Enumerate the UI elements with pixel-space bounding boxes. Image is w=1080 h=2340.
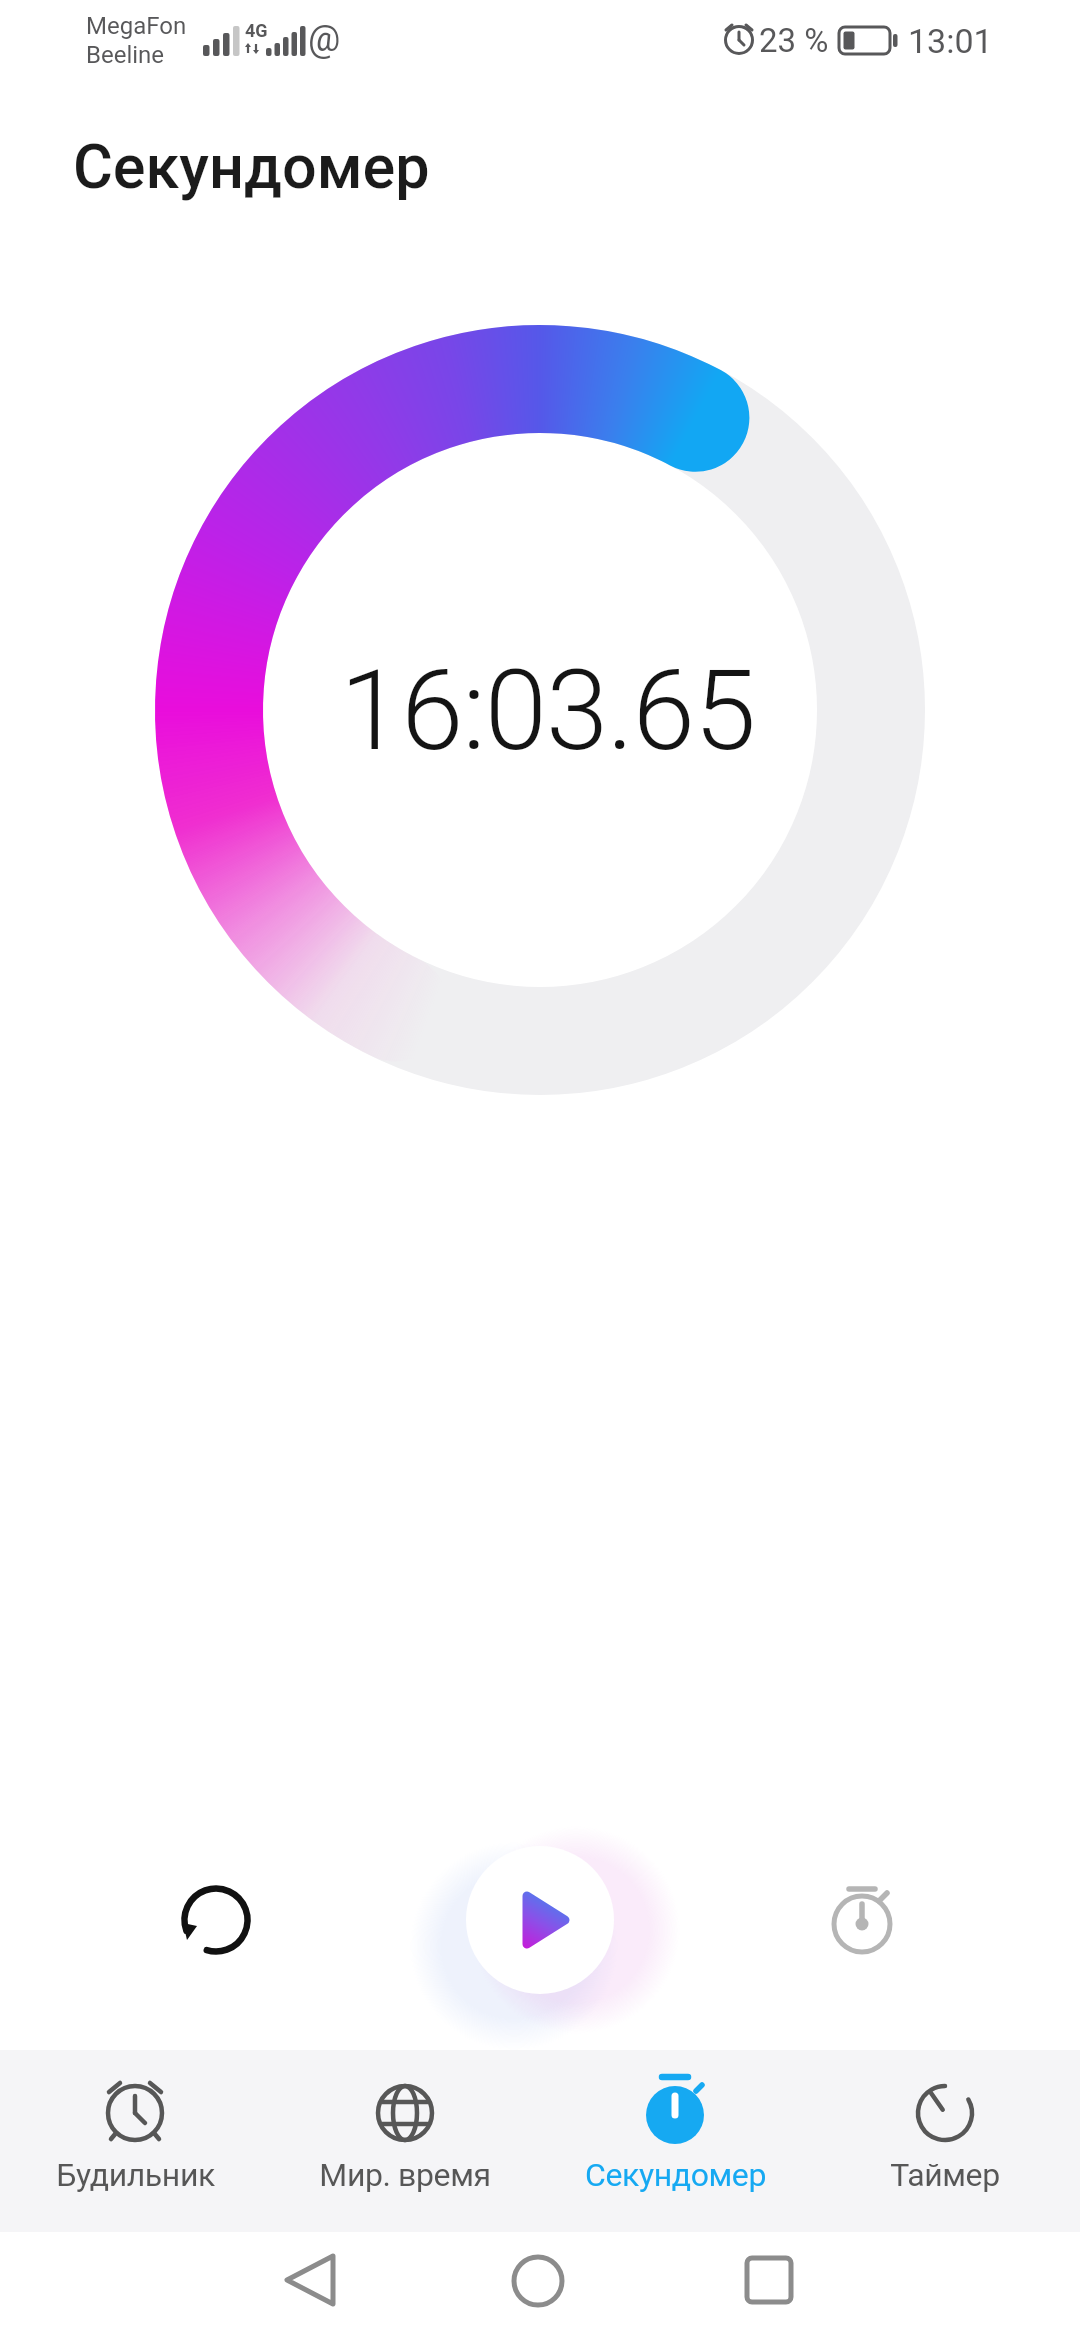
staticText: Будильник [56, 2156, 215, 2194]
staticText: 4G [245, 20, 268, 41]
staticText: 23 % [759, 21, 829, 60]
button[interactable] [508, 2250, 568, 2310]
button[interactable] [280, 2250, 340, 2310]
staticText: Таймер [890, 2156, 1000, 2194]
button[interactable] [466, 1846, 614, 1994]
staticText: Мир. время [319, 2156, 491, 2194]
staticText: Секундомер [73, 131, 430, 202]
button[interactable]: Секундомер [555, 2072, 795, 2194]
button[interactable]: Таймер [825, 2072, 1065, 2194]
staticText: 16:03.65 [340, 645, 756, 776]
button[interactable] [802, 1864, 922, 1984]
staticText: MegaFon [86, 12, 187, 40]
staticText: @ [308, 18, 341, 60]
button[interactable]: Будильник [15, 2072, 255, 2194]
staticText: 13:01 [908, 21, 993, 61]
button[interactable]: Мир. время [285, 2072, 525, 2194]
button[interactable] [739, 2250, 799, 2310]
staticText: Секундомер [585, 2156, 766, 2194]
button[interactable] [156, 1860, 276, 1980]
staticText: Beeline [86, 41, 165, 69]
